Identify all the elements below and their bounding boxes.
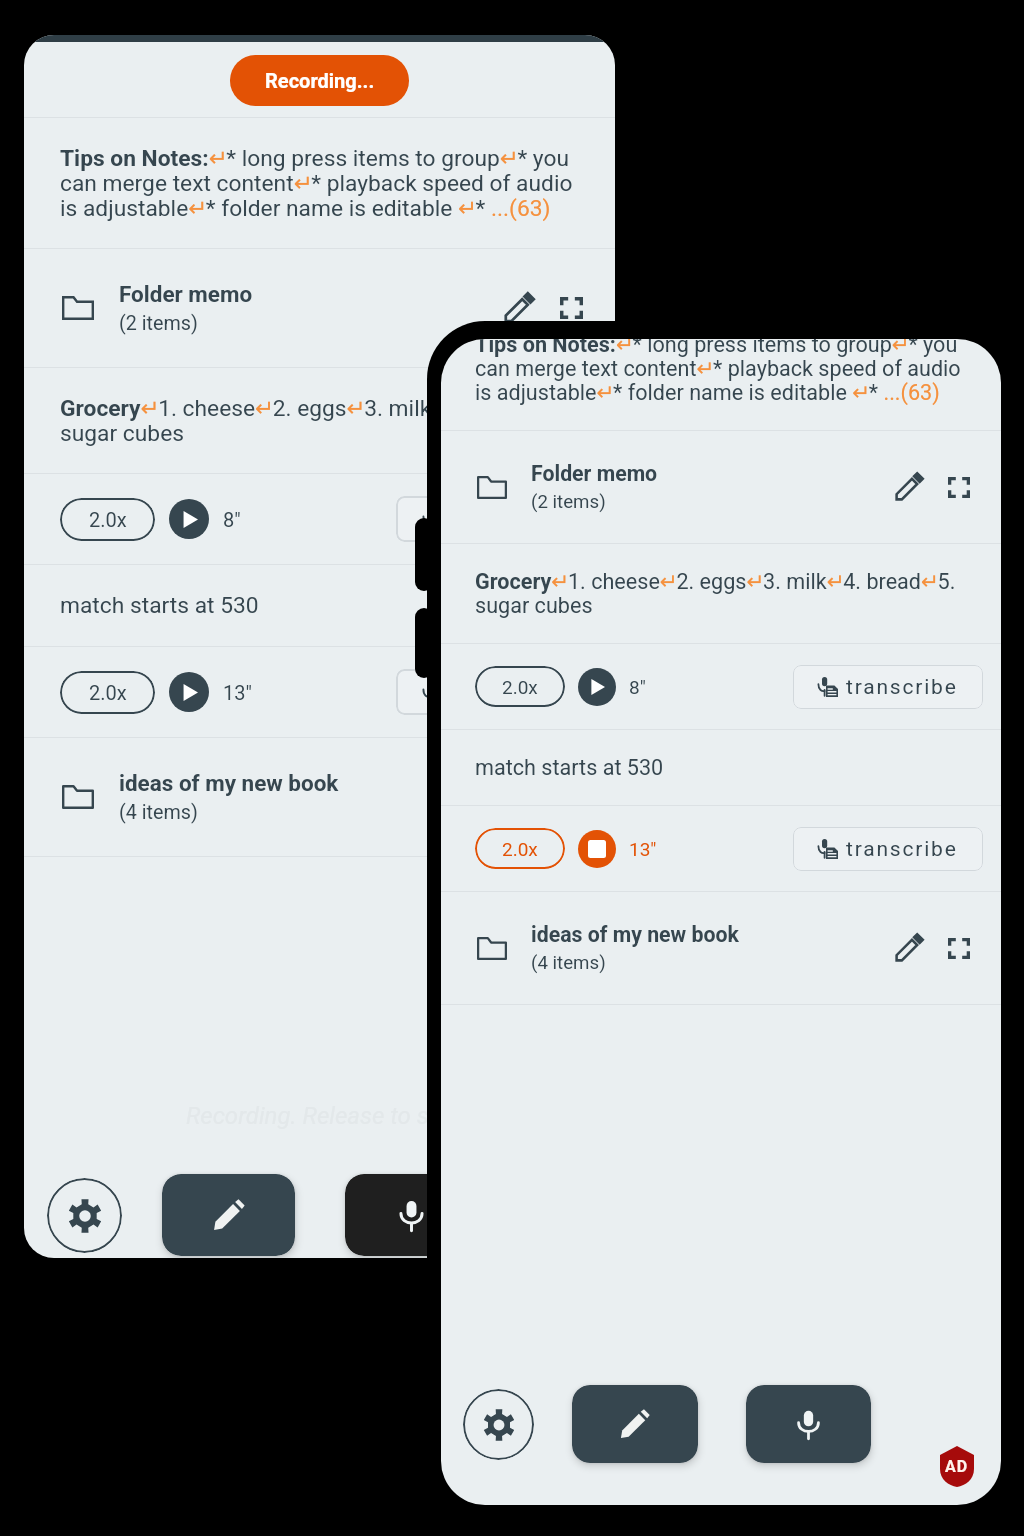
staticText: AD [945, 1457, 969, 1476]
button[interactable]: 2.0x [475, 828, 565, 869]
staticText: Tips on Notes:↵* long press items to gro… [475, 339, 967, 405]
button[interactable]: Grocery↵1. cheese↵2. eggs↵3. milk↵4. bre… [441, 544, 1001, 643]
button[interactable]: Stop recording [578, 830, 616, 868]
button[interactable]: Expand folder [937, 926, 981, 970]
staticText: 2.0x [502, 838, 538, 860]
staticText: 13" [223, 681, 252, 704]
button[interactable]: transcribe [793, 827, 983, 871]
button[interactable]: Record audio note [345, 1174, 477, 1256]
button[interactable]: 2.0x [60, 498, 155, 541]
button[interactable]: New text note [572, 1385, 698, 1463]
button[interactable]: Expand folder [548, 285, 594, 331]
staticText: Grocery↵1. cheese↵2. eggs↵3. milk↵4. bre… [60, 395, 579, 446]
staticText: 13" [629, 838, 657, 860]
staticText: 2.0x [89, 508, 127, 531]
staticText: 8" [629, 676, 646, 698]
staticText: Folder memo [531, 461, 658, 486]
staticText: (4 items) [119, 801, 198, 824]
staticText: match starts at 530 [475, 755, 664, 780]
button[interactable]: match starts at 530 [441, 730, 1001, 805]
button[interactable]: ideas of my new book [24, 738, 615, 856]
button[interactable]: Rename folder [886, 465, 930, 509]
staticText: ideas of my new book [531, 922, 739, 947]
button[interactable]: Expand folder [937, 465, 981, 509]
button[interactable]: transcribe [793, 665, 983, 709]
staticText: Folder memo [119, 281, 253, 307]
button[interactable]: Folder memo [441, 431, 1001, 543]
staticText: transcribe [846, 837, 958, 862]
staticText: transcribe [452, 506, 570, 532]
button[interactable]: Recording... [230, 55, 409, 106]
button[interactable]: Play [169, 499, 209, 539]
button[interactable]: match starts at 530 [24, 565, 615, 646]
button[interactable]: transcribe [396, 496, 596, 542]
staticText: Grocery↵1. cheese↵2. eggs↵3. milk↵4. bre… [475, 569, 967, 618]
button[interactable]: Settings [47, 1178, 122, 1253]
staticText: ideas of my new book [119, 770, 339, 796]
button[interactable]: Tips on Notes:↵* long press items to gro… [24, 118, 615, 248]
button[interactable]: Play [578, 668, 616, 706]
staticText: Recording. Release to send [186, 1102, 468, 1130]
staticText: Recording... [265, 69, 375, 92]
button[interactable]: 2.0x [475, 666, 565, 707]
button[interactable]: Record audio note [746, 1385, 871, 1463]
staticText: match starts at 530 [60, 592, 259, 619]
button[interactable]: Rename folder [495, 774, 541, 820]
button[interactable]: Play [169, 672, 209, 712]
button[interactable]: Tips on Notes:↵* long press items to gro… [441, 339, 1001, 430]
button[interactable]: Settings [463, 1389, 534, 1460]
staticText: 8" [223, 508, 241, 531]
button[interactable]: ideas of my new book [441, 892, 1001, 1004]
staticText: (4 items) [531, 952, 606, 974]
button[interactable]: Folder memo [24, 249, 615, 367]
button[interactable]: Expand folder [548, 774, 594, 820]
staticText: transcribe [452, 679, 570, 705]
button[interactable]: 2.0x [60, 671, 155, 714]
staticText: 2.0x [89, 681, 127, 704]
staticText: (2 items) [119, 312, 198, 335]
staticText: 2.0x [502, 676, 538, 698]
staticText: (2 items) [531, 491, 606, 513]
button[interactable]: Advertisement [940, 1446, 974, 1487]
button[interactable]: Rename folder [886, 926, 930, 970]
button[interactable]: Rename folder [495, 285, 541, 331]
staticText: transcribe [846, 675, 958, 700]
button[interactable]: transcribe [396, 669, 596, 715]
staticText: Tips on Notes:↵* long press items to gro… [60, 145, 579, 221]
button[interactable]: Grocery↵1. cheese↵2. eggs↵3. milk↵4. bre… [24, 368, 615, 473]
button[interactable]: New text note [162, 1174, 295, 1256]
